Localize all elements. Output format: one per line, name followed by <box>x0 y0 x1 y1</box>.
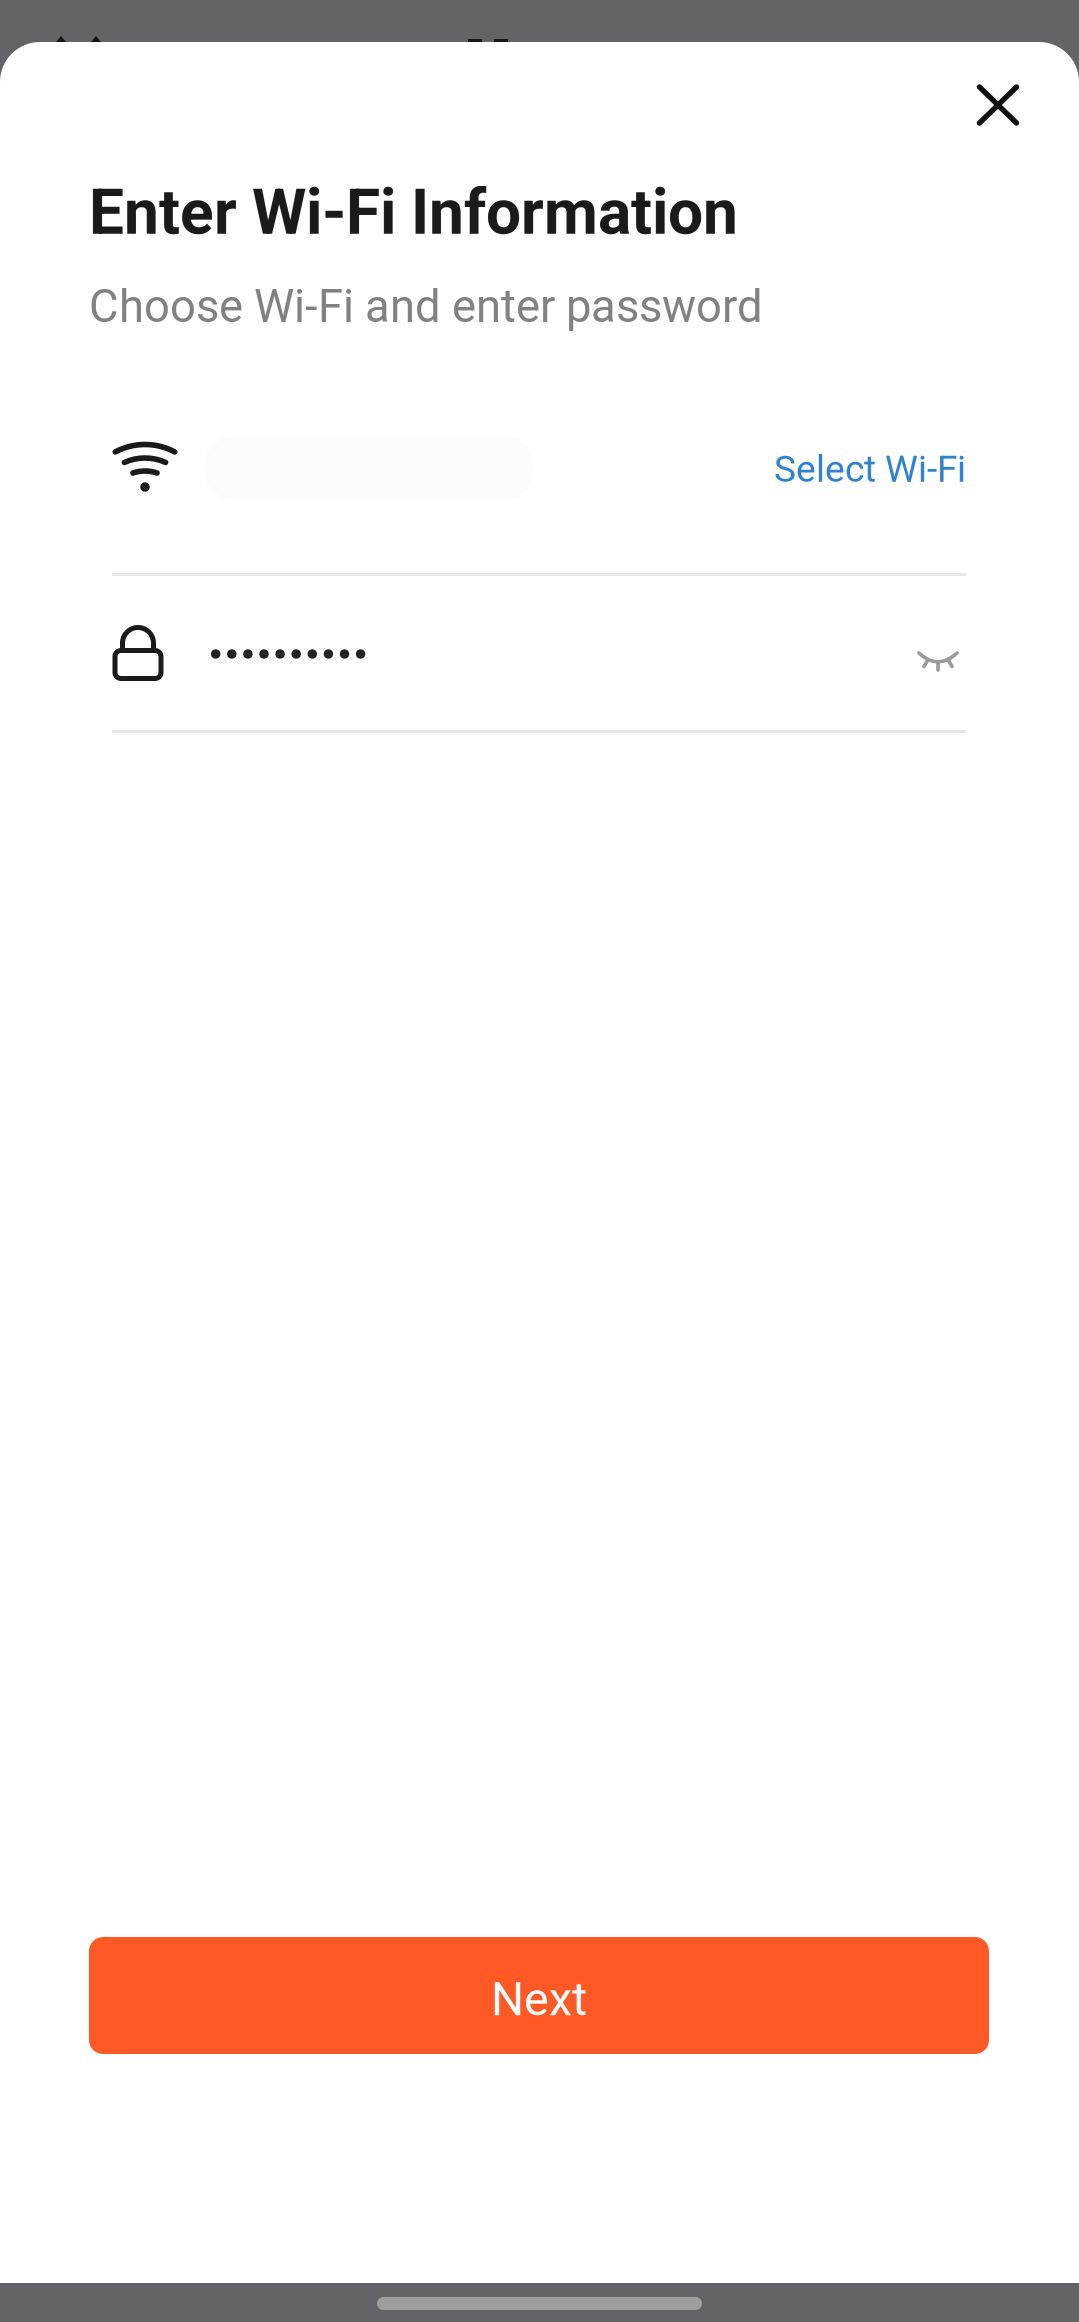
button[interactable]: Show password <box>892 615 984 707</box>
button[interactable]: Close <box>946 53 1050 157</box>
button[interactable]: Select Wi-Fi <box>774 431 974 507</box>
staticText: Next <box>491 1972 587 2027</box>
button[interactable]: Next <box>89 1937 989 2054</box>
staticText: Choose Wi-Fi and enter password <box>89 280 763 333</box>
staticText: Enter Wi-Fi Information <box>89 176 738 249</box>
button[interactable]: Wi-Fi network <box>112 422 712 522</box>
button[interactable]: Password <box>112 604 812 704</box>
staticText: Select Wi-Fi <box>774 447 966 491</box>
